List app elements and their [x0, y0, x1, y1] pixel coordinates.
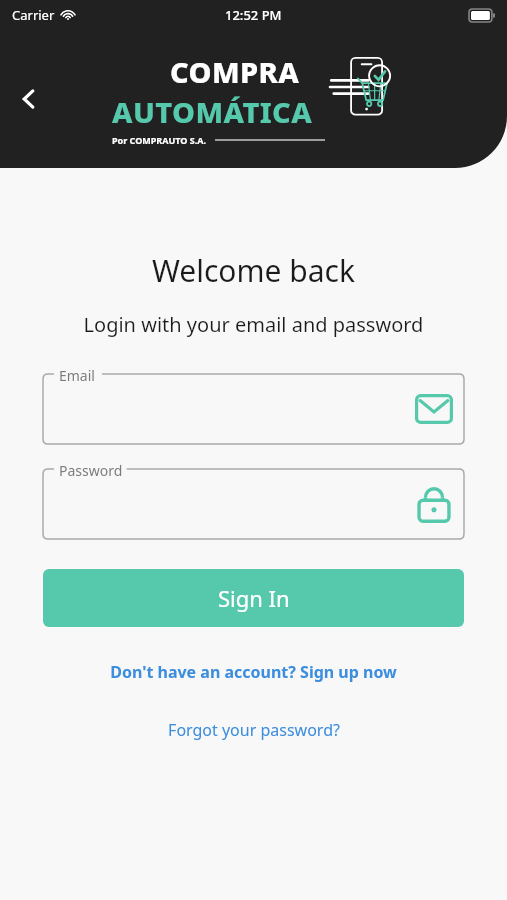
button[interactable]: Don't have an account? Sign up now [0, 655, 507, 689]
staticText: AUTOMÁTICA [112, 92, 313, 131]
staticText: Sign In [218, 583, 290, 613]
staticText: Por COMPRAUTO S.A. [112, 134, 207, 146]
staticText: Email [59, 366, 95, 385]
staticText: Login with your email and password [0, 311, 507, 338]
button[interactable]: Password [43, 469, 464, 539]
button[interactable]: Sign In [43, 569, 464, 627]
staticText: Carrier [12, 6, 55, 24]
staticText: COMPRA [170, 52, 300, 91]
button[interactable]: Back [6, 76, 52, 122]
staticText: Welcome back [0, 250, 507, 291]
staticText: Don't have an account? Sign up now [110, 661, 397, 683]
staticText: 12:52 PM [225, 6, 282, 24]
staticText: Password [59, 461, 123, 480]
staticText: Forgot your password? [168, 719, 340, 741]
button[interactable]: Forgot your password? [0, 713, 507, 747]
button[interactable]: Email [43, 374, 464, 444]
